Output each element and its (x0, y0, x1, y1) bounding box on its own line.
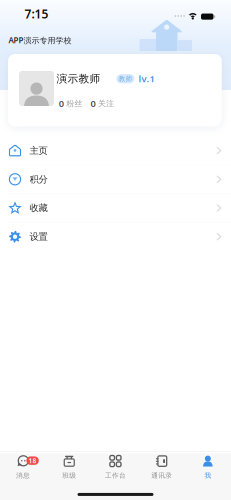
button[interactable]: 班级 (46, 452, 92, 485)
staticText: 教师 (118, 75, 132, 83)
staticText: 班级 (62, 471, 76, 480)
button[interactable]: 工作台 (92, 452, 139, 485)
staticText: 7:15 (24, 6, 48, 22)
staticText: 收藏 (29, 202, 47, 214)
button[interactable]: 设置 (0, 223, 231, 251)
staticText: 积分 (29, 174, 47, 185)
staticText: 0 (59, 97, 64, 110)
staticText: 主页 (29, 145, 47, 156)
staticText: APP演示专用学校 (9, 35, 72, 46)
button[interactable]: 我 (185, 452, 231, 485)
staticText: 消息 (16, 471, 30, 480)
button[interactable]: 收藏 (0, 194, 231, 223)
button[interactable]: 演示教师 (8, 54, 222, 126)
staticText: 我 (204, 471, 211, 480)
button[interactable]: 18 (0, 452, 46, 485)
staticText: 18 (29, 456, 37, 465)
button[interactable]: 通讯录 (139, 452, 185, 485)
staticText: 关注 (98, 99, 114, 108)
staticText: lv.1 (138, 73, 154, 85)
staticText: 通讯录 (151, 471, 172, 480)
button[interactable]: 主页 (0, 136, 231, 165)
staticText: 粉丝 (66, 99, 82, 108)
staticText: 工作台 (105, 471, 126, 480)
staticText: 0 (90, 97, 95, 110)
staticText: 演示教师 (56, 72, 100, 85)
staticText: 设置 (29, 231, 47, 242)
button[interactable]: 积分 (0, 165, 231, 194)
